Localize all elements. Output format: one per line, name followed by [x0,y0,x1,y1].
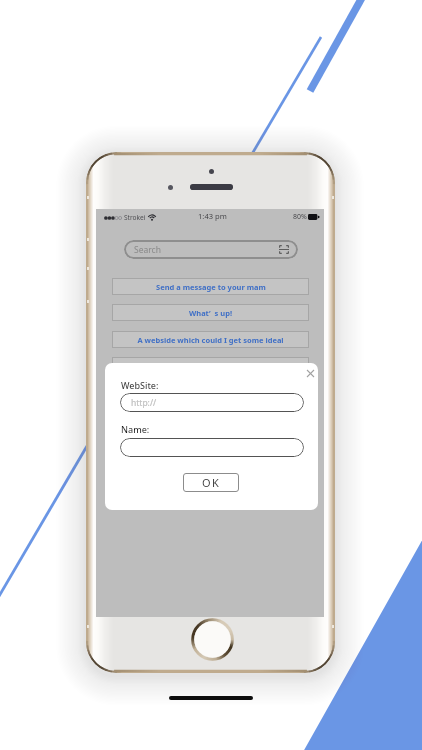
button[interactable]: Search [124,240,298,259]
button[interactable]: What’ s up! [112,304,309,321]
staticText: http:// [131,397,157,409]
button[interactable] [120,438,304,457]
other: Scan [279,245,289,254]
button[interactable] [112,357,309,374]
button[interactable]: Send a message to your mam [112,278,309,295]
staticText: WebSite: [121,379,159,391]
button[interactable]: OK [183,473,239,492]
staticText: Name: [121,423,150,435]
staticText: Strokei [124,213,146,222]
staticText: 1:43 pm [198,211,227,221]
staticText: What’ s up! [189,308,232,318]
button[interactable]: Close [304,367,316,379]
button[interactable]: http:// [120,393,304,412]
button[interactable]: A webside which could I get some ideal [112,331,309,348]
staticText: A webside which could I get some ideal [137,335,284,345]
staticText: Send a message to your mam [156,282,266,292]
staticText: Search [134,244,161,256]
button[interactable]: Home [191,618,234,661]
staticText: 80% [293,212,307,222]
staticText: OK [202,475,221,490]
